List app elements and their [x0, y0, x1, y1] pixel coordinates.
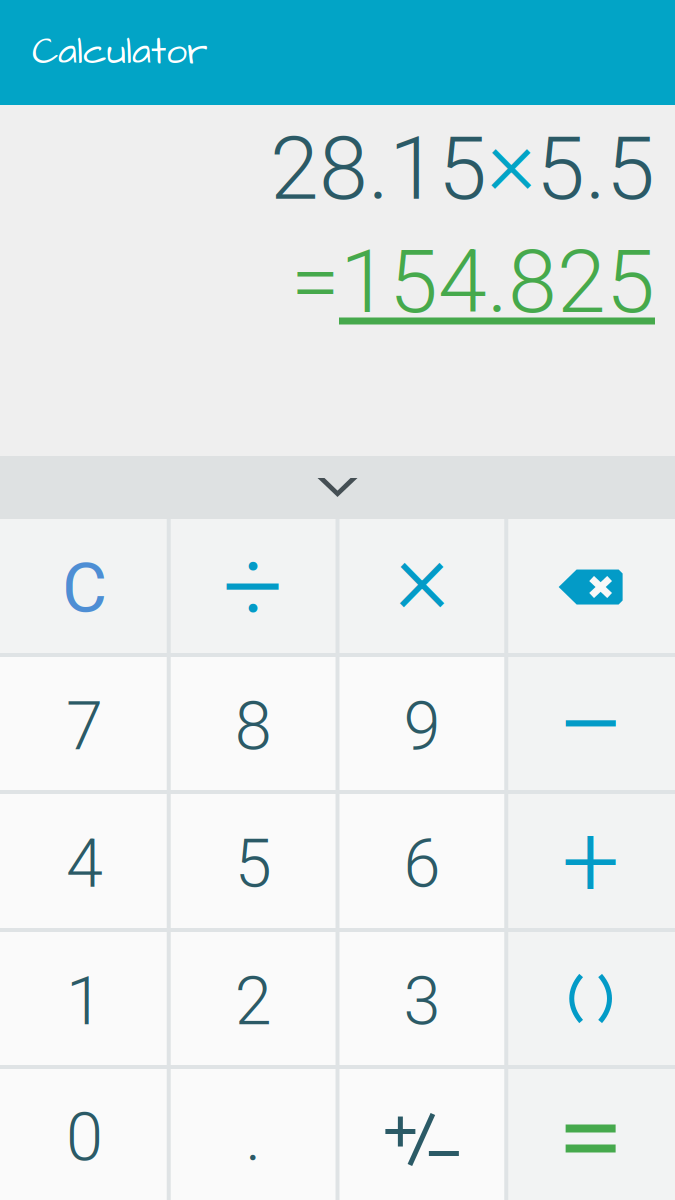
button[interactable]: Equals: [506, 1067, 675, 1200]
button[interactable]: 9: [337, 655, 506, 792]
staticText: 6: [403, 825, 440, 903]
staticText: 8: [235, 687, 272, 765]
button[interactable]: Multiply: [337, 519, 506, 655]
button[interactable]: Show history: [0, 456, 675, 519]
staticText: −: [556, 654, 626, 797]
staticText: ×: [395, 516, 449, 638]
staticText: +: [562, 801, 620, 921]
staticText: .: [245, 1098, 261, 1176]
staticText: 5.5: [536, 117, 655, 220]
button[interactable]: 5: [169, 792, 338, 930]
staticText: 4: [66, 825, 103, 903]
staticText: 5: [235, 825, 272, 903]
button[interactable]: .: [169, 1067, 338, 1200]
staticText: 28.15: [270, 117, 487, 220]
staticText: 3: [403, 962, 440, 1040]
button[interactable]: 7: [0, 655, 169, 792]
button[interactable]: Backspace: [506, 519, 675, 655]
button[interactable]: 8: [169, 655, 338, 792]
button[interactable]: Plus minus: [337, 1067, 506, 1200]
button[interactable]: Clear: [0, 519, 169, 655]
button[interactable]: Divide: [169, 519, 338, 655]
button[interactable]: 4: [0, 792, 169, 930]
staticText: =: [291, 230, 340, 333]
staticText: 0: [66, 1098, 103, 1176]
button[interactable]: 3: [337, 930, 506, 1067]
staticText: ×: [487, 107, 536, 216]
staticText: ÷: [223, 524, 284, 649]
button[interactable]: 0: [0, 1067, 169, 1200]
button[interactable]: 2: [169, 930, 338, 1067]
staticText: 9: [403, 687, 440, 765]
button[interactable]: Plus: [506, 792, 675, 930]
staticText: 2: [235, 962, 272, 1040]
button[interactable]: Minus: [506, 655, 675, 792]
staticText: 1: [66, 962, 103, 1040]
staticText: C: [62, 547, 107, 629]
staticText: 7: [66, 687, 103, 765]
button[interactable]: Parentheses: [506, 930, 675, 1067]
button[interactable]: 6: [337, 792, 506, 930]
staticText: 154.825: [340, 230, 655, 333]
staticText: Calculator: [32, 27, 208, 78]
button[interactable]: 1: [0, 930, 169, 1067]
